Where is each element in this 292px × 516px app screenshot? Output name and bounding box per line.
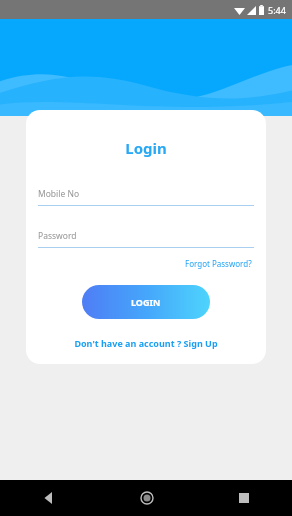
button[interactable]: Password [26, 230, 266, 248]
staticText: Forgot Password? [185, 258, 252, 269]
button[interactable]: Mobile No [26, 188, 266, 206]
staticText: Password [38, 230, 77, 242]
button[interactable]: Don't have an account ? Sign Up [26, 337, 266, 349]
button[interactable]: Home [98, 480, 195, 516]
staticText: Mobile No [38, 188, 80, 200]
button[interactable]: Back [0, 480, 98, 516]
staticText: Login [26, 138, 266, 158]
button[interactable]: LOGIN [82, 285, 210, 319]
staticText: LOGIN [131, 296, 161, 308]
button[interactable]: Recent apps [195, 480, 292, 516]
staticText: Don't have an account ? Sign Up [74, 337, 218, 349]
staticText: 5:44 [268, 4, 286, 16]
button[interactable]: Forgot Password? [183, 256, 254, 271]
